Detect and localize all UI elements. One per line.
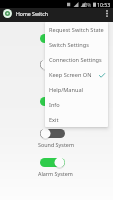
button[interactable]: Alarm System [0, 157, 113, 177]
button[interactable]: Sound System [0, 128, 113, 148]
button[interactable]: Connection Settings [45, 52, 108, 67]
button[interactable]: Keep Screen ON [45, 67, 108, 82]
staticText: Home Switch [16, 10, 48, 17]
staticText: Info [49, 101, 60, 109]
staticText: Connection Settings [49, 56, 102, 64]
staticText: Exit [49, 116, 59, 124]
button[interactable]: Help/Manual [45, 82, 108, 97]
staticText: Keep Screen ON [49, 71, 92, 79]
staticText: 10:53 [97, 1, 111, 8]
button[interactable]: Heater [0, 59, 113, 79]
staticText: Sound System [38, 141, 74, 148]
staticText: Request Switch State [49, 26, 104, 34]
button[interactable]: More options [101, 8, 112, 19]
button[interactable]: Exit [45, 112, 108, 127]
staticText: Switch Settings [49, 41, 89, 49]
button[interactable]: Request Switch State [45, 22, 108, 37]
staticText: Help/Manual [49, 86, 83, 94]
staticText: Heater [47, 72, 65, 79]
staticText: Lights [48, 46, 64, 53]
staticText: Alarm System [38, 170, 73, 177]
button[interactable]: Lights [0, 33, 113, 53]
staticText: 63% [82, 2, 92, 8]
button[interactable]: Switch Settings [45, 37, 108, 52]
button[interactable]: Info [45, 97, 108, 112]
button[interactable]: Garden [0, 96, 113, 116]
